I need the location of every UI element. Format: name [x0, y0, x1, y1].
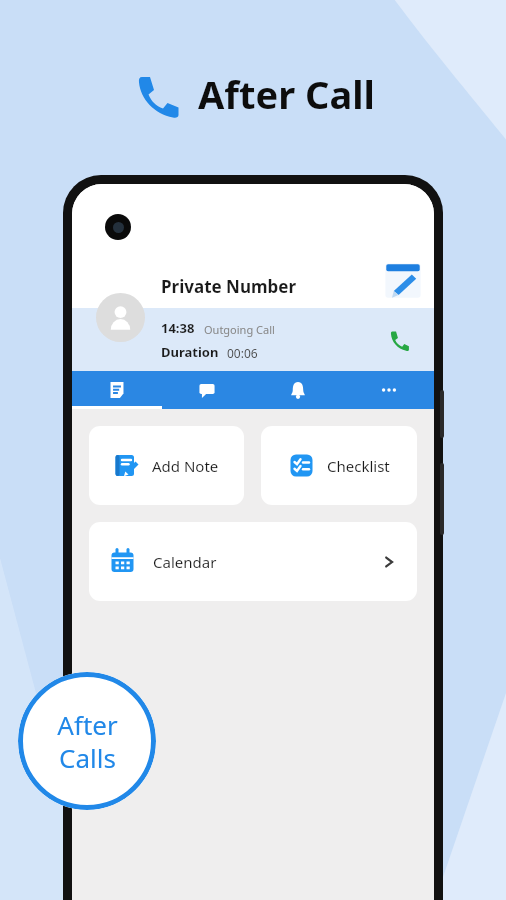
staticText: 00:06 — [227, 345, 258, 361]
button[interactable]: Checklist — [261, 426, 417, 505]
button[interactable]: Call back — [382, 323, 416, 357]
button[interactable]: Reminders — [252, 371, 343, 409]
staticText: Add Note — [152, 456, 219, 476]
button[interactable]: Calendar — [89, 522, 417, 601]
button[interactable]: After Calls — [18, 672, 156, 810]
staticText: Calendar — [153, 552, 217, 572]
staticText: Checklist — [327, 456, 390, 476]
staticText: 14:38 — [161, 319, 195, 337]
button[interactable]: Edit note — [381, 259, 425, 303]
button[interactable]: More — [343, 371, 434, 409]
staticText: After Call — [198, 68, 375, 120]
button[interactable]: Add Note — [89, 426, 244, 505]
staticText: After Calls — [57, 707, 118, 776]
staticText: Duration — [161, 343, 219, 361]
staticText: Private Number — [161, 275, 297, 298]
staticText: Outgoing Call — [204, 322, 275, 337]
button[interactable]: Messages — [162, 371, 252, 409]
button[interactable]: Notes — [72, 371, 162, 409]
